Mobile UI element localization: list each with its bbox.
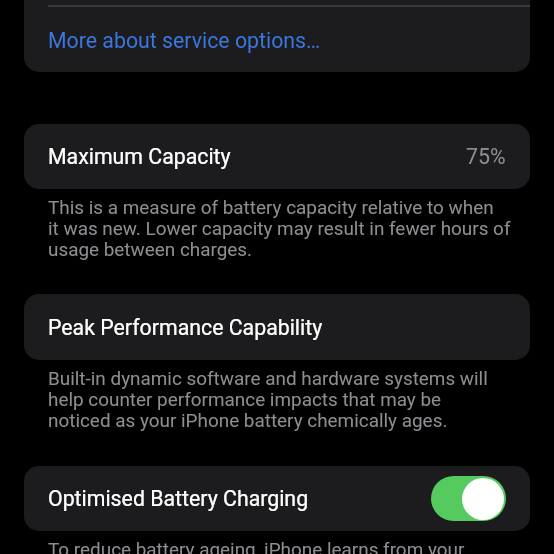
staticText: Built-in dynamic software and hardware s… [48,368,488,431]
staticText: More about service options… [48,28,321,53]
staticText: To reduce battery ageing, iPhone learns … [48,539,465,554]
staticText: Maximum Capacity [48,144,231,169]
staticText: Optimised Battery Charging [48,486,309,511]
button[interactable]: More about service options… [24,0,530,72]
button[interactable]: Peak Performance Capability [24,294,530,360]
staticText: 75% [466,144,506,169]
staticText: Peak Performance Capability [48,315,323,340]
button[interactable]: Maximum Capacity [24,124,530,189]
button[interactable]: Optimised Battery Charging, on [431,476,506,521]
staticText: This is a measure of battery capacity re… [48,197,511,260]
button[interactable]: Optimised Battery Charging [24,466,530,531]
